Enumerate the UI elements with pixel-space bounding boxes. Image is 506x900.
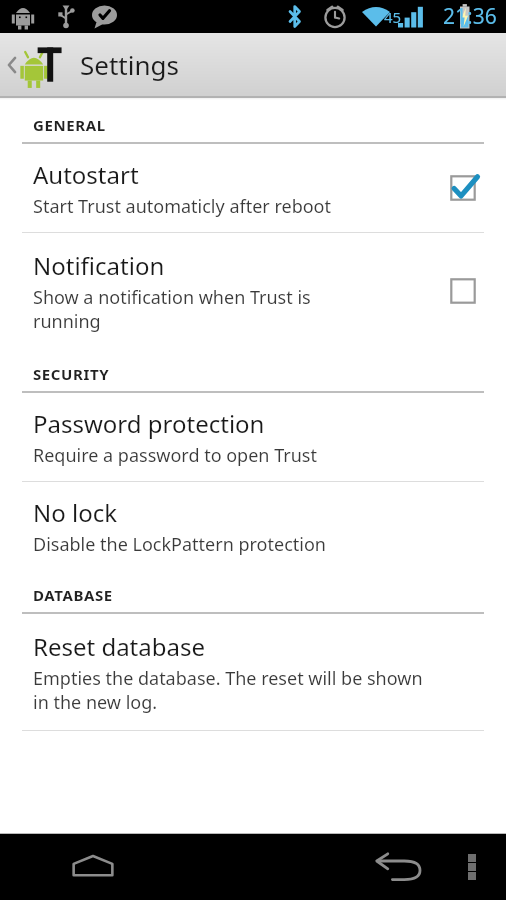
button[interactable]: Autostart <box>0 144 506 232</box>
staticText: No lock <box>33 496 118 529</box>
staticText: Autostart <box>33 158 139 191</box>
staticText: DATABASE <box>33 585 113 605</box>
staticText: Disable the LockPattern protection <box>33 532 326 557</box>
button[interactable]: Navigate up <box>0 33 70 96</box>
staticText: SECURITY <box>33 364 110 384</box>
staticText: Start Trust automaticly after reboot <box>33 194 332 219</box>
button[interactable]: No lock <box>0 482 506 570</box>
staticText: Show a notification when Trust is runnin… <box>33 285 311 333</box>
staticText: Empties the database. The reset will be … <box>33 666 423 714</box>
staticText: Reset database <box>33 630 206 663</box>
staticText: GENERAL <box>33 115 106 135</box>
button[interactable]: Password protection <box>0 393 506 481</box>
button[interactable]: Home <box>58 834 128 900</box>
staticText: 45 <box>384 7 402 27</box>
staticText: Notification <box>33 249 165 282</box>
staticText: Password protection <box>33 407 265 440</box>
button[interactable]: Back <box>362 834 432 900</box>
button[interactable]: Notification <box>0 233 506 349</box>
staticText: Settings <box>80 47 179 82</box>
button[interactable]: Notification, unchecked <box>440 268 486 314</box>
staticText: 21:36 <box>443 2 497 31</box>
button[interactable]: More options <box>446 841 498 893</box>
staticText: Require a password to open Trust <box>33 443 317 468</box>
button[interactable]: Autostart, checked <box>440 165 486 211</box>
button[interactable]: Reset database <box>0 614 506 730</box>
